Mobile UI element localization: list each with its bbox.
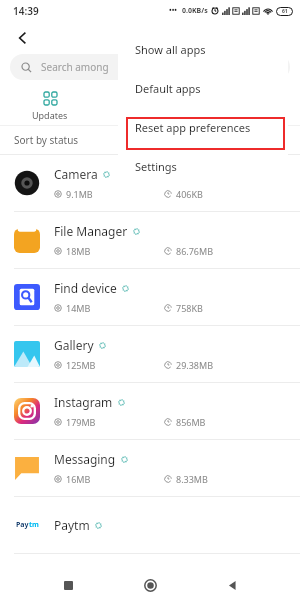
staticText: Find device <box>54 280 117 296</box>
button[interactable]: Camera <box>0 155 300 212</box>
staticText: 9.1MB <box>66 188 93 200</box>
staticText: 14:39 <box>13 4 39 18</box>
button[interactable]: Gallery <box>0 326 300 383</box>
button[interactable]: Updates <box>0 87 100 125</box>
staticText: Sort by status <box>14 133 79 147</box>
button[interactable]: Unin <box>100 87 200 125</box>
staticText: Reset app preferences <box>135 120 251 135</box>
staticText: Updates <box>32 109 68 121</box>
staticText: 29.38MB <box>176 359 214 371</box>
button[interactable]: Home <box>136 571 164 599</box>
button[interactable]: Search among <box>10 54 290 80</box>
staticText: 18MB <box>66 245 91 257</box>
staticText: 61 <box>282 8 288 15</box>
button[interactable]: Back <box>218 571 246 599</box>
button[interactable]: Messaging <box>0 440 300 497</box>
button[interactable]: Instagram <box>0 383 300 440</box>
staticText: Paytm <box>54 517 90 533</box>
staticText: 16MB <box>66 473 91 485</box>
button[interactable]: File Manager <box>0 212 300 269</box>
button[interactable]: Reset app preferences <box>118 108 288 147</box>
staticText: 125MB <box>66 359 96 371</box>
staticText: 14MB <box>66 302 91 314</box>
staticText: Instagram <box>54 394 113 410</box>
staticText: 86.76MB <box>176 245 214 257</box>
button[interactable]: Show all apps <box>118 30 288 69</box>
staticText: Show all apps <box>135 42 206 57</box>
button[interactable]: Find device <box>0 269 300 326</box>
staticText: File Manager <box>54 223 128 239</box>
staticText: Camera <box>54 166 98 182</box>
staticText: Gallery <box>54 337 94 353</box>
staticText: 0.0KB/s <box>182 6 208 16</box>
staticText: 179MB <box>66 416 96 428</box>
staticText: Settings <box>135 159 177 174</box>
staticText: 856MB <box>176 416 206 428</box>
staticText: Unin <box>140 109 161 121</box>
button[interactable]: Back <box>10 25 36 51</box>
button[interactable]: Settings <box>118 147 288 186</box>
button[interactable]: Default apps <box>118 69 288 108</box>
button[interactable]: Pay <box>0 497 300 554</box>
staticText: tm <box>29 520 39 530</box>
button[interactable]: Recent apps <box>54 571 82 599</box>
staticText: 758KB <box>176 302 203 314</box>
button[interactable]: Sort by status <box>14 126 300 154</box>
staticText: Messaging <box>54 451 116 467</box>
staticText: Pay <box>16 520 29 530</box>
staticText: Search among <box>41 60 109 74</box>
staticText: ••• <box>169 6 177 16</box>
staticText: 8.33MB <box>176 473 208 485</box>
staticText: 406KB <box>176 188 203 200</box>
staticText: Default apps <box>135 81 201 96</box>
